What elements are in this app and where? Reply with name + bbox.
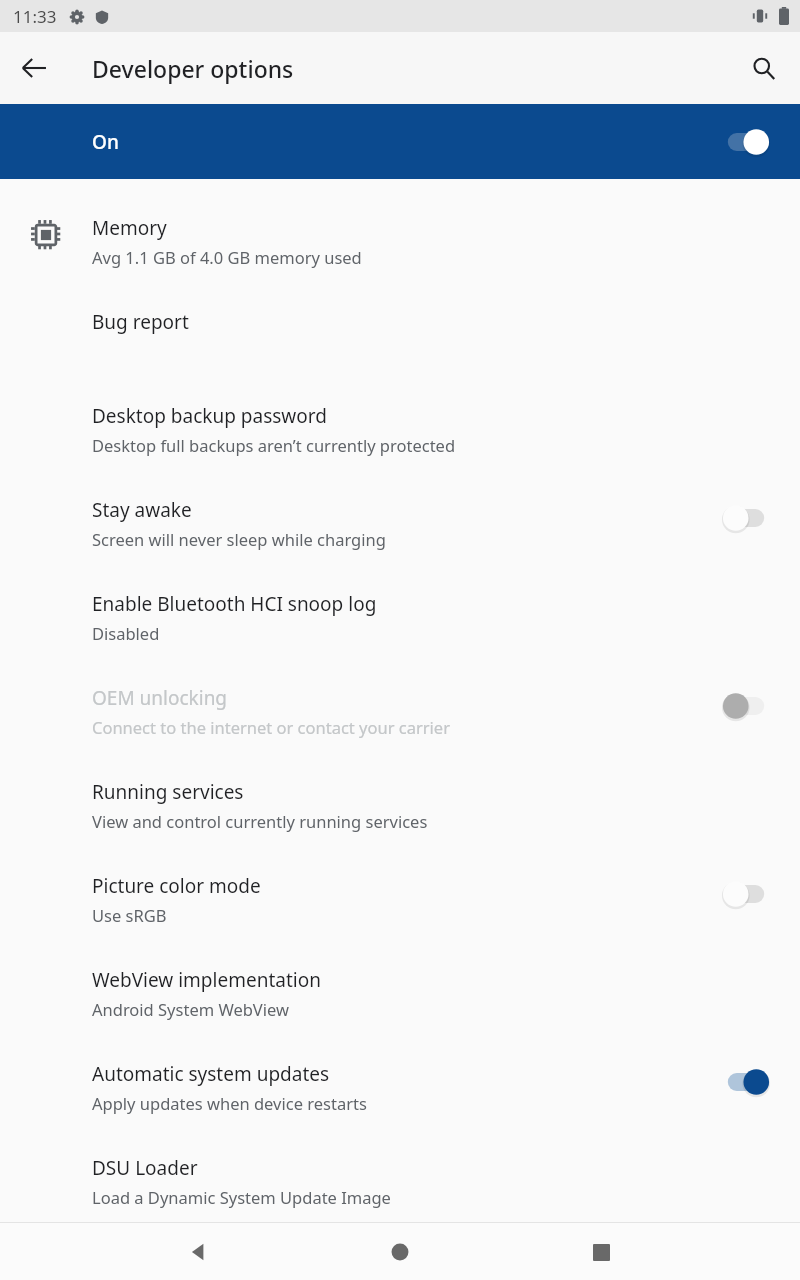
staticText: Running services	[92, 779, 244, 805]
button[interactable]: Back	[175, 1228, 223, 1276]
button[interactable]: Enable Bluetooth HCI snoop log	[0, 579, 800, 673]
button[interactable]: DSU Loader	[0, 1143, 800, 1237]
staticText: WebView implementation	[92, 967, 321, 993]
button[interactable]: Running services	[0, 767, 800, 861]
button[interactable]: WebView implementation	[0, 955, 800, 1049]
staticText: Picture color mode	[92, 873, 261, 899]
staticText: Developer options	[92, 53, 294, 84]
button[interactable]: Memory	[0, 203, 800, 297]
staticText: Apply updates when device restarts	[92, 1092, 367, 1114]
button[interactable]: Back	[10, 44, 58, 92]
button[interactable]: Desktop backup password	[0, 391, 800, 485]
staticText: Enable Bluetooth HCI snoop log	[92, 591, 377, 617]
staticText: 11:33	[13, 5, 57, 28]
button[interactable]: System UI demo mode	[0, 1237, 800, 1280]
staticText: DSU Loader	[92, 1155, 198, 1181]
staticText: System UI demo mode	[92, 1249, 296, 1275]
button[interactable]: Bug report	[0, 297, 800, 391]
button[interactable]: OEM unlocking	[0, 673, 800, 767]
staticText: OEM unlocking	[92, 685, 228, 711]
button[interactable]: Picture color mode	[0, 861, 800, 955]
staticText: Desktop backup password	[92, 403, 327, 429]
staticText: Bug report	[92, 309, 189, 335]
staticText: Memory	[92, 215, 167, 241]
staticText: Load a Dynamic System Update Image	[92, 1186, 391, 1208]
staticText: Android System WebView	[92, 998, 289, 1020]
staticText: On	[92, 129, 119, 155]
staticText: Automatic system updates	[92, 1061, 330, 1087]
button[interactable]: Stay awake	[0, 485, 800, 579]
button[interactable]: Recent apps	[577, 1228, 625, 1276]
button[interactable]: Home	[376, 1228, 424, 1276]
button[interactable]: Automatic system updates	[0, 1049, 800, 1143]
staticText: Avg 1.1 GB of 4.0 GB memory used	[92, 246, 362, 268]
staticText: Stay awake	[92, 497, 192, 523]
button[interactable]: Search	[739, 44, 787, 92]
staticText: Disabled	[92, 622, 160, 644]
staticText: Connect to the internet or contact your …	[92, 716, 450, 738]
staticText: View and control currently running servi…	[92, 810, 428, 832]
staticText: Screen will never sleep while charging	[92, 528, 386, 550]
staticText: Use sRGB	[92, 904, 167, 926]
staticText: Desktop full backups aren’t currently pr…	[92, 434, 456, 456]
button[interactable]: On	[0, 104, 800, 179]
